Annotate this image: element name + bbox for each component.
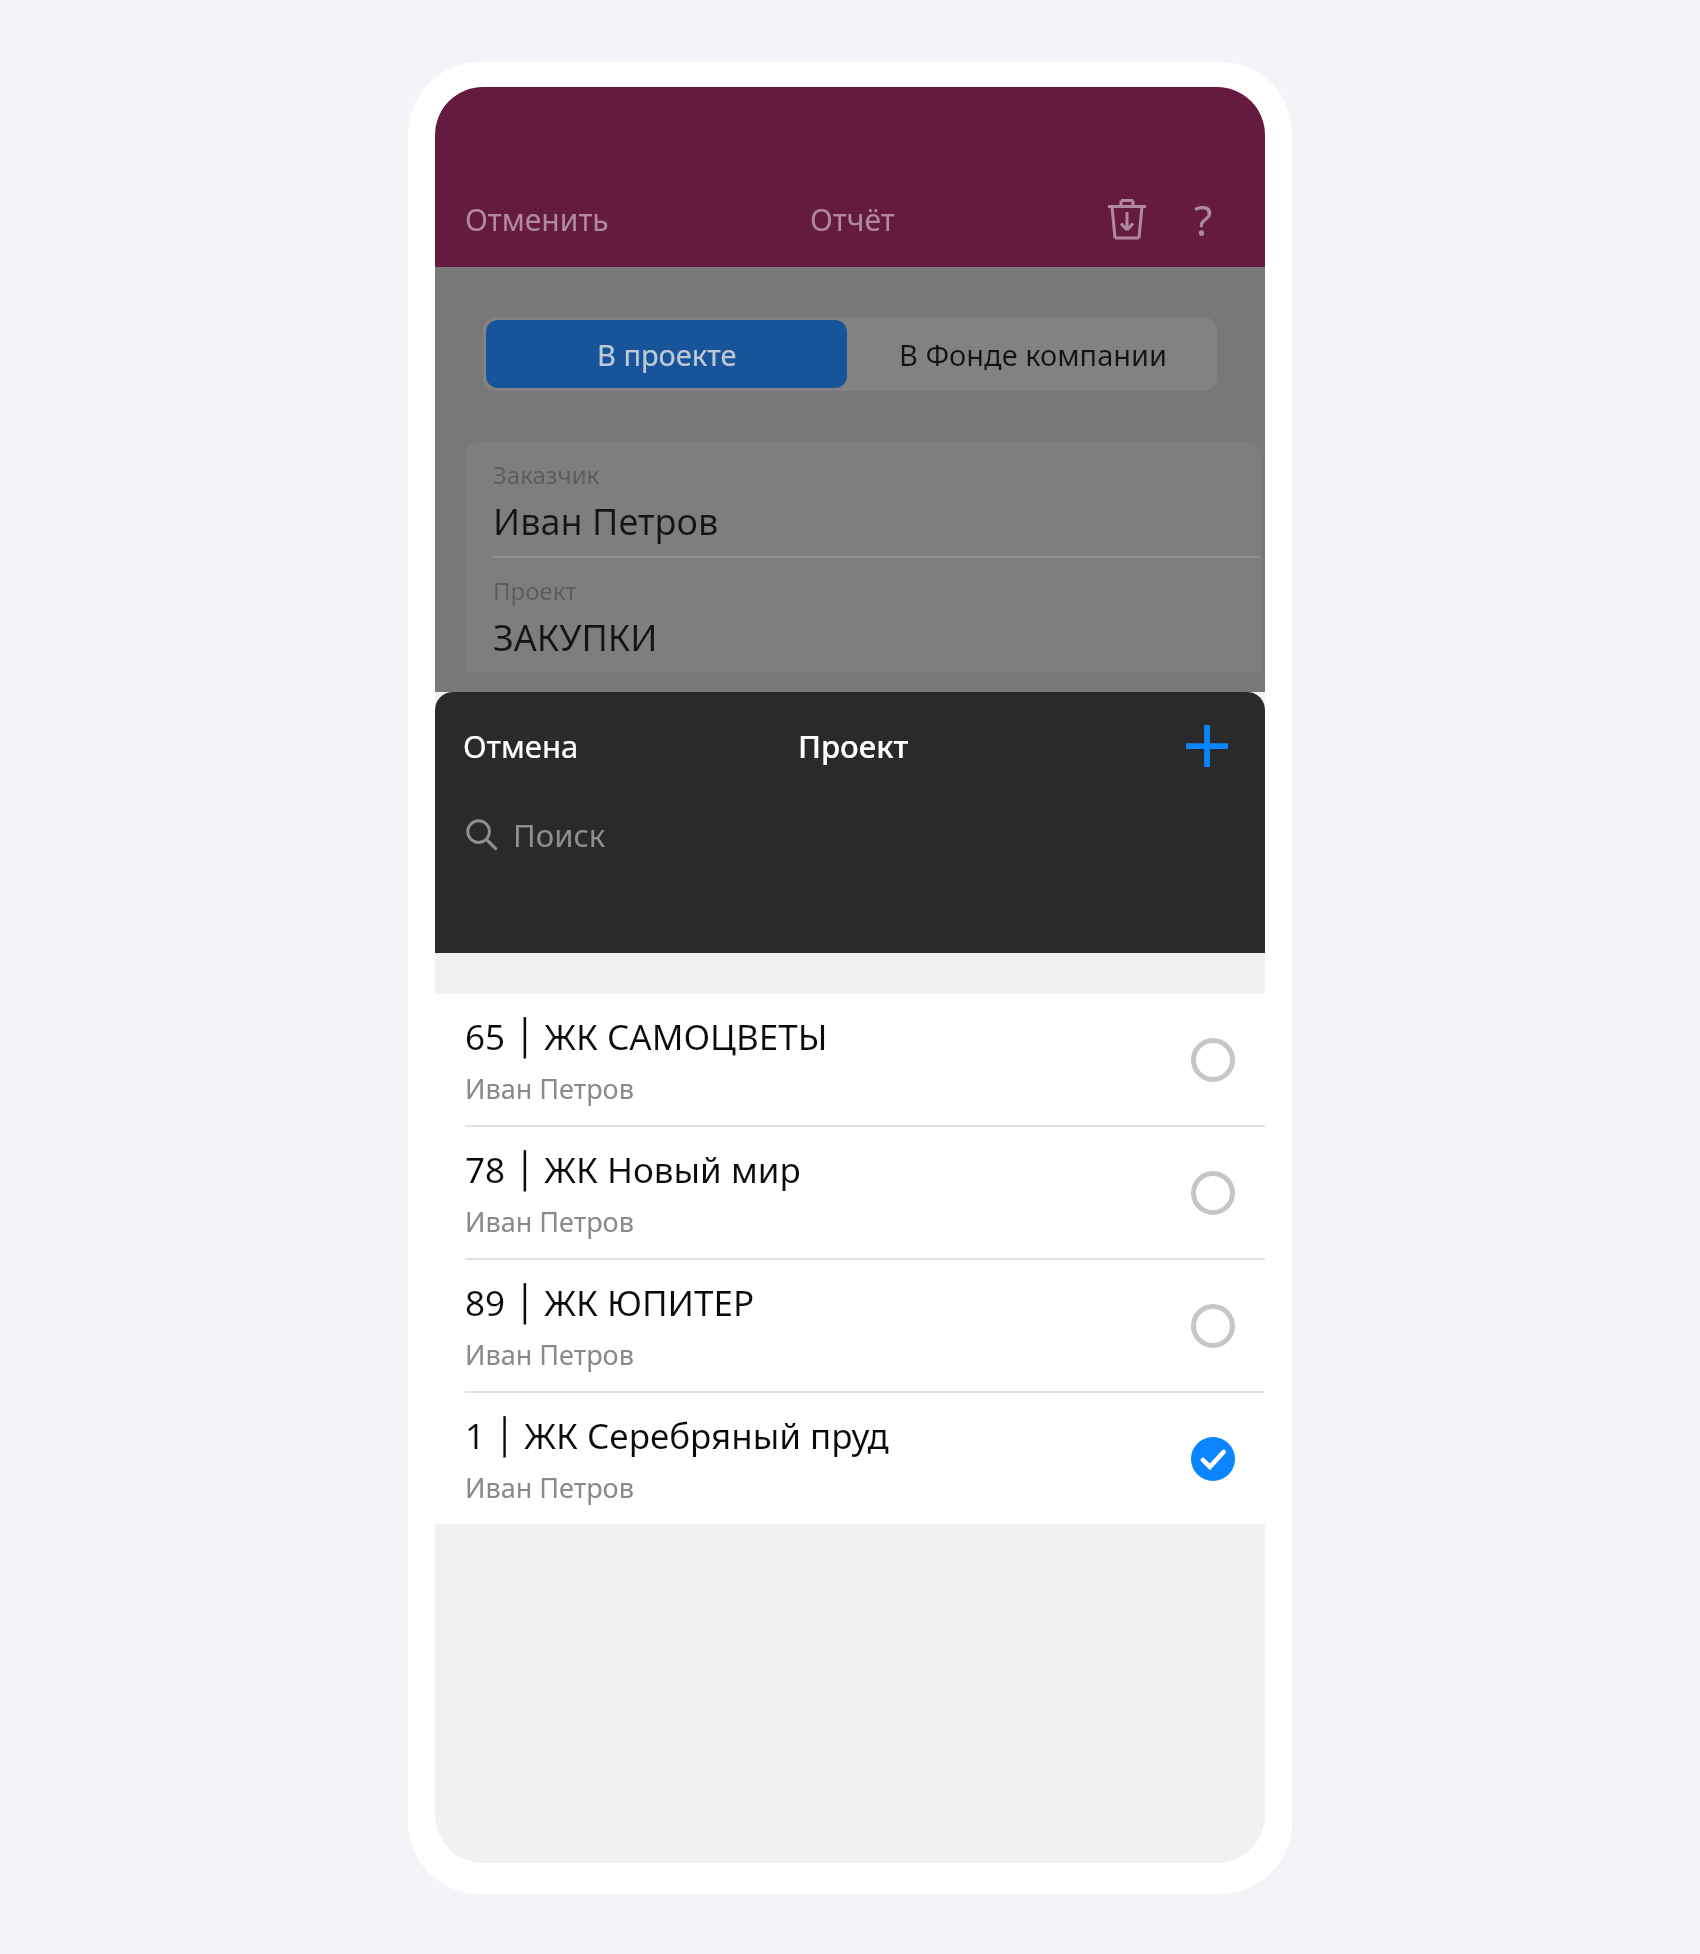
button[interactable]: Add project bbox=[1167, 706, 1247, 786]
button[interactable]: 89 │ ЖК ЮПИТЕР bbox=[435, 1260, 1265, 1391]
staticText: Иван Петров bbox=[465, 1469, 634, 1506]
button[interactable]: Help bbox=[1165, 181, 1241, 257]
staticText: Иван Петров bbox=[493, 497, 719, 546]
staticText: 65 │ ЖК САМОЦВЕТЫ bbox=[465, 1013, 828, 1061]
staticText: В Фонде компании bbox=[899, 335, 1168, 374]
staticText: Проект bbox=[493, 574, 577, 607]
staticText: В проекте bbox=[597, 335, 737, 374]
staticText: Отчёт bbox=[810, 199, 895, 240]
staticText: 89 │ ЖК ЮПИТЕР bbox=[465, 1279, 755, 1327]
button[interactable]: Archive bbox=[1089, 181, 1165, 257]
button[interactable]: В Фонде компании bbox=[850, 317, 1217, 391]
staticText: Иван Петров bbox=[465, 1336, 634, 1373]
staticText: Поиск bbox=[513, 814, 606, 856]
staticText: Иван Петров bbox=[465, 1203, 634, 1240]
staticText: ЗАКУПКИ bbox=[493, 613, 658, 662]
button[interactable]: Поиск bbox=[465, 800, 1265, 870]
staticText: 78 │ ЖК Новый мир bbox=[465, 1146, 801, 1194]
staticText: Иван Петров bbox=[465, 1070, 634, 1107]
button[interactable]: 65 │ ЖК САМОЦВЕТЫ bbox=[435, 994, 1265, 1125]
button[interactable]: Отменить bbox=[435, 189, 617, 250]
staticText: Отмена bbox=[463, 725, 579, 767]
staticText: 1 │ ЖК Серебряный пруд bbox=[465, 1412, 889, 1460]
staticText: Отменить bbox=[465, 199, 609, 240]
button[interactable]: 1 │ ЖК Серебряный пруд bbox=[435, 1393, 1265, 1524]
button[interactable]: Проект bbox=[465, 558, 1261, 672]
button[interactable]: Отмена bbox=[435, 713, 591, 779]
button[interactable]: 78 │ ЖК Новый мир bbox=[435, 1127, 1265, 1258]
button[interactable]: В проекте bbox=[486, 320, 847, 388]
button[interactable]: Заказчик bbox=[465, 442, 1261, 556]
staticText: Проект bbox=[798, 725, 909, 767]
staticText: ? bbox=[1194, 191, 1213, 248]
staticText: Заказчик bbox=[493, 458, 600, 491]
